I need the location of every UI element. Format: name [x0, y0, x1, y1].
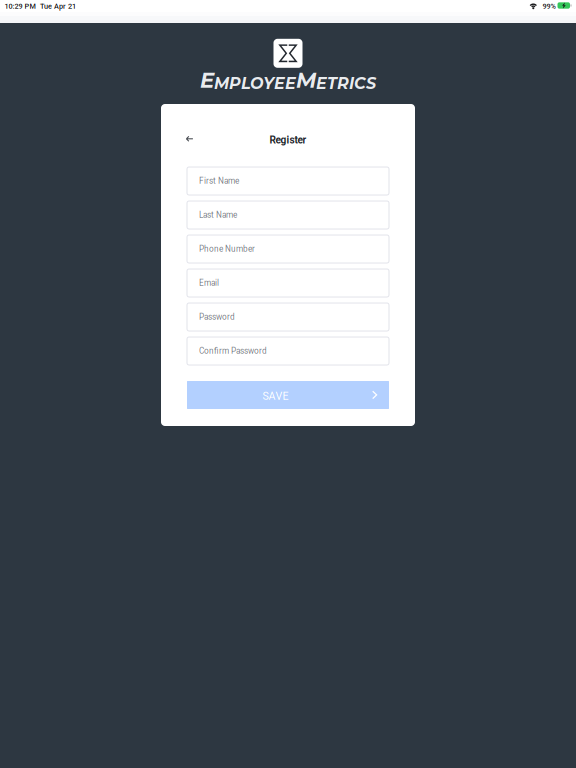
- staticText: Last Name: [199, 210, 237, 220]
- staticText: MPLOYEE: [214, 73, 296, 93]
- staticText: 10:29 PM: [4, 2, 35, 11]
- staticText: Email: [199, 278, 219, 288]
- button[interactable]: Back: [177, 126, 203, 152]
- staticText: Confirm Password: [199, 346, 267, 356]
- staticText: Register: [269, 134, 306, 146]
- staticText: E: [200, 67, 214, 93]
- staticText: First Name: [199, 176, 239, 186]
- staticText: Phone Number: [199, 244, 255, 254]
- staticText: Password: [199, 312, 235, 322]
- staticText: M: [296, 67, 316, 93]
- staticText: SAVE: [262, 390, 288, 402]
- staticText: 99%: [542, 2, 555, 11]
- staticText: Tue Apr 21: [40, 2, 76, 11]
- button[interactable]: SAVE: [187, 381, 389, 409]
- staticText: ETRICS: [316, 73, 376, 93]
